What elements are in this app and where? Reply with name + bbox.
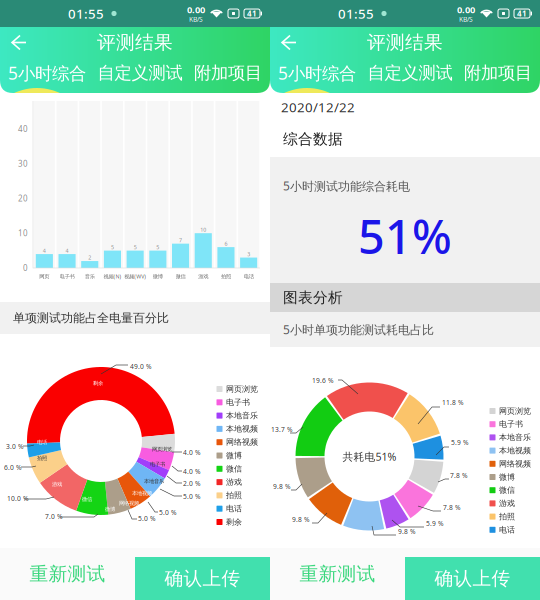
staticText: 本地音乐 [144,478,164,485]
staticText: 10 [18,228,28,238]
staticText: 网络视频 [119,500,139,507]
staticText: 0.00 [457,3,475,16]
staticText: 30 [18,158,28,169]
button[interactable]: 附加项目 [194,62,262,84]
staticText: 5.0 % [138,514,156,523]
staticText: 本地音乐 [226,411,258,420]
staticText: 电话 [226,504,242,514]
staticText: 01:55 [68,5,104,22]
staticText: 网页浏览 [499,406,531,416]
staticText: 5小时测试功能综合耗电 [283,178,410,194]
staticText: 2020/12/22 [281,98,355,116]
staticText: 5小时综合 [8,61,86,84]
staticText: 2.0 % [183,479,201,488]
staticText: 5 [134,244,137,251]
staticText: 拍照 [226,490,242,500]
staticText: 附加项目 [194,62,262,84]
staticText: 电话 [37,439,47,446]
staticText: 7 [179,237,182,244]
staticText: 微博 [226,451,242,460]
staticText: 电话 [244,273,254,280]
staticText: 13.7 % [271,425,293,434]
staticText: 5.0 % [183,492,201,501]
staticText: 微博 [105,506,115,513]
staticText: 01:55 [338,5,374,22]
staticText: 6 [224,240,227,247]
staticText: 微博 [499,472,515,482]
staticText: 评测结果 [97,31,173,54]
staticText: 拍照 [37,455,47,462]
staticText: 49.0 % [130,362,152,371]
staticText: 电话 [499,525,515,535]
staticText: 0.00 [187,3,205,16]
staticText: 本地视频 [499,446,531,455]
staticText: 7.8 % [450,471,468,480]
staticText: 3 [247,250,250,258]
staticText: 重新测试 [299,562,375,585]
staticText: 重新测试 [29,562,105,585]
staticText: 9.8 % [292,515,310,524]
staticText: 网络视频 [499,459,531,469]
staticText: 视频(N) [103,273,121,280]
staticText: 电子书 [499,419,523,429]
staticText: 附加项目 [464,62,532,84]
staticText: 单项测试功能占全电量百分比 [13,311,169,325]
button[interactable]: 自定义测试 [97,62,182,84]
staticText: 5小时单项功能测试耗电占比 [283,321,434,337]
staticText: 5 [156,244,159,251]
staticText: 剩余 [226,517,242,527]
staticText: 拍照 [221,273,231,280]
staticText: 4.0 % [183,448,201,457]
staticText: 游戏 [226,477,242,487]
button[interactable]: 5小时综合 [278,61,356,84]
staticText: 网页浏览 [226,384,258,394]
button[interactable]: 重新测试 [0,548,270,600]
staticText: 电子书 [226,397,250,407]
button[interactable]: 附加项目 [464,62,532,84]
staticText: 游戏 [52,481,62,488]
staticText: 2 [88,254,91,261]
staticText: 图表分析 [283,288,343,306]
staticText: 4.0 % [183,467,201,476]
staticText: 视频(WV) [124,273,146,280]
button[interactable]: Back [270,27,306,57]
button[interactable]: 确认上传 [270,548,540,600]
staticText: 确认上传 [434,567,510,590]
staticText: 微信 [82,496,92,503]
staticText: 11.8 % [442,398,464,407]
staticText: 拍照 [499,512,515,521]
staticText: 10 [200,226,206,233]
staticText: 评测结果 [367,31,443,54]
staticText: 4 [65,247,68,254]
staticText: 7.8 % [443,503,461,512]
staticText: 9.8 % [273,482,291,491]
staticText: 51% [358,205,452,267]
staticText: 剩余 [93,380,103,387]
button[interactable]: 重新测试 [270,548,540,600]
staticText: 微信 [226,464,242,474]
staticText: 0 [23,263,28,273]
staticText: 本地视频 [132,490,152,497]
staticText: 电子书 [60,273,75,280]
staticText: 自定义测试 [97,62,182,84]
staticText: 19.6 % [312,376,334,385]
staticText: 网页 [39,273,49,280]
button[interactable]: 确认上传 [0,548,270,600]
staticText: 微博 [153,273,163,280]
staticText: 游戏 [198,273,208,280]
staticText: 4 [43,247,46,254]
staticText: 本地音乐 [499,432,531,442]
staticText: 微信 [175,273,185,280]
staticText: 5.9 % [451,438,469,447]
staticText: 共耗电51% [342,449,396,464]
button[interactable]: Back [0,27,36,57]
staticText: 游戏 [499,498,515,508]
staticText: 7.0 % [45,512,63,521]
staticText: 自定义测试 [367,62,452,84]
button[interactable]: 5小时综合 [8,61,86,84]
staticText: 40 [18,123,28,134]
staticText: 5.0 % [159,508,177,517]
button[interactable]: 自定义测试 [367,62,452,84]
staticText: 20 [18,193,28,204]
staticText: 41 [247,8,257,19]
